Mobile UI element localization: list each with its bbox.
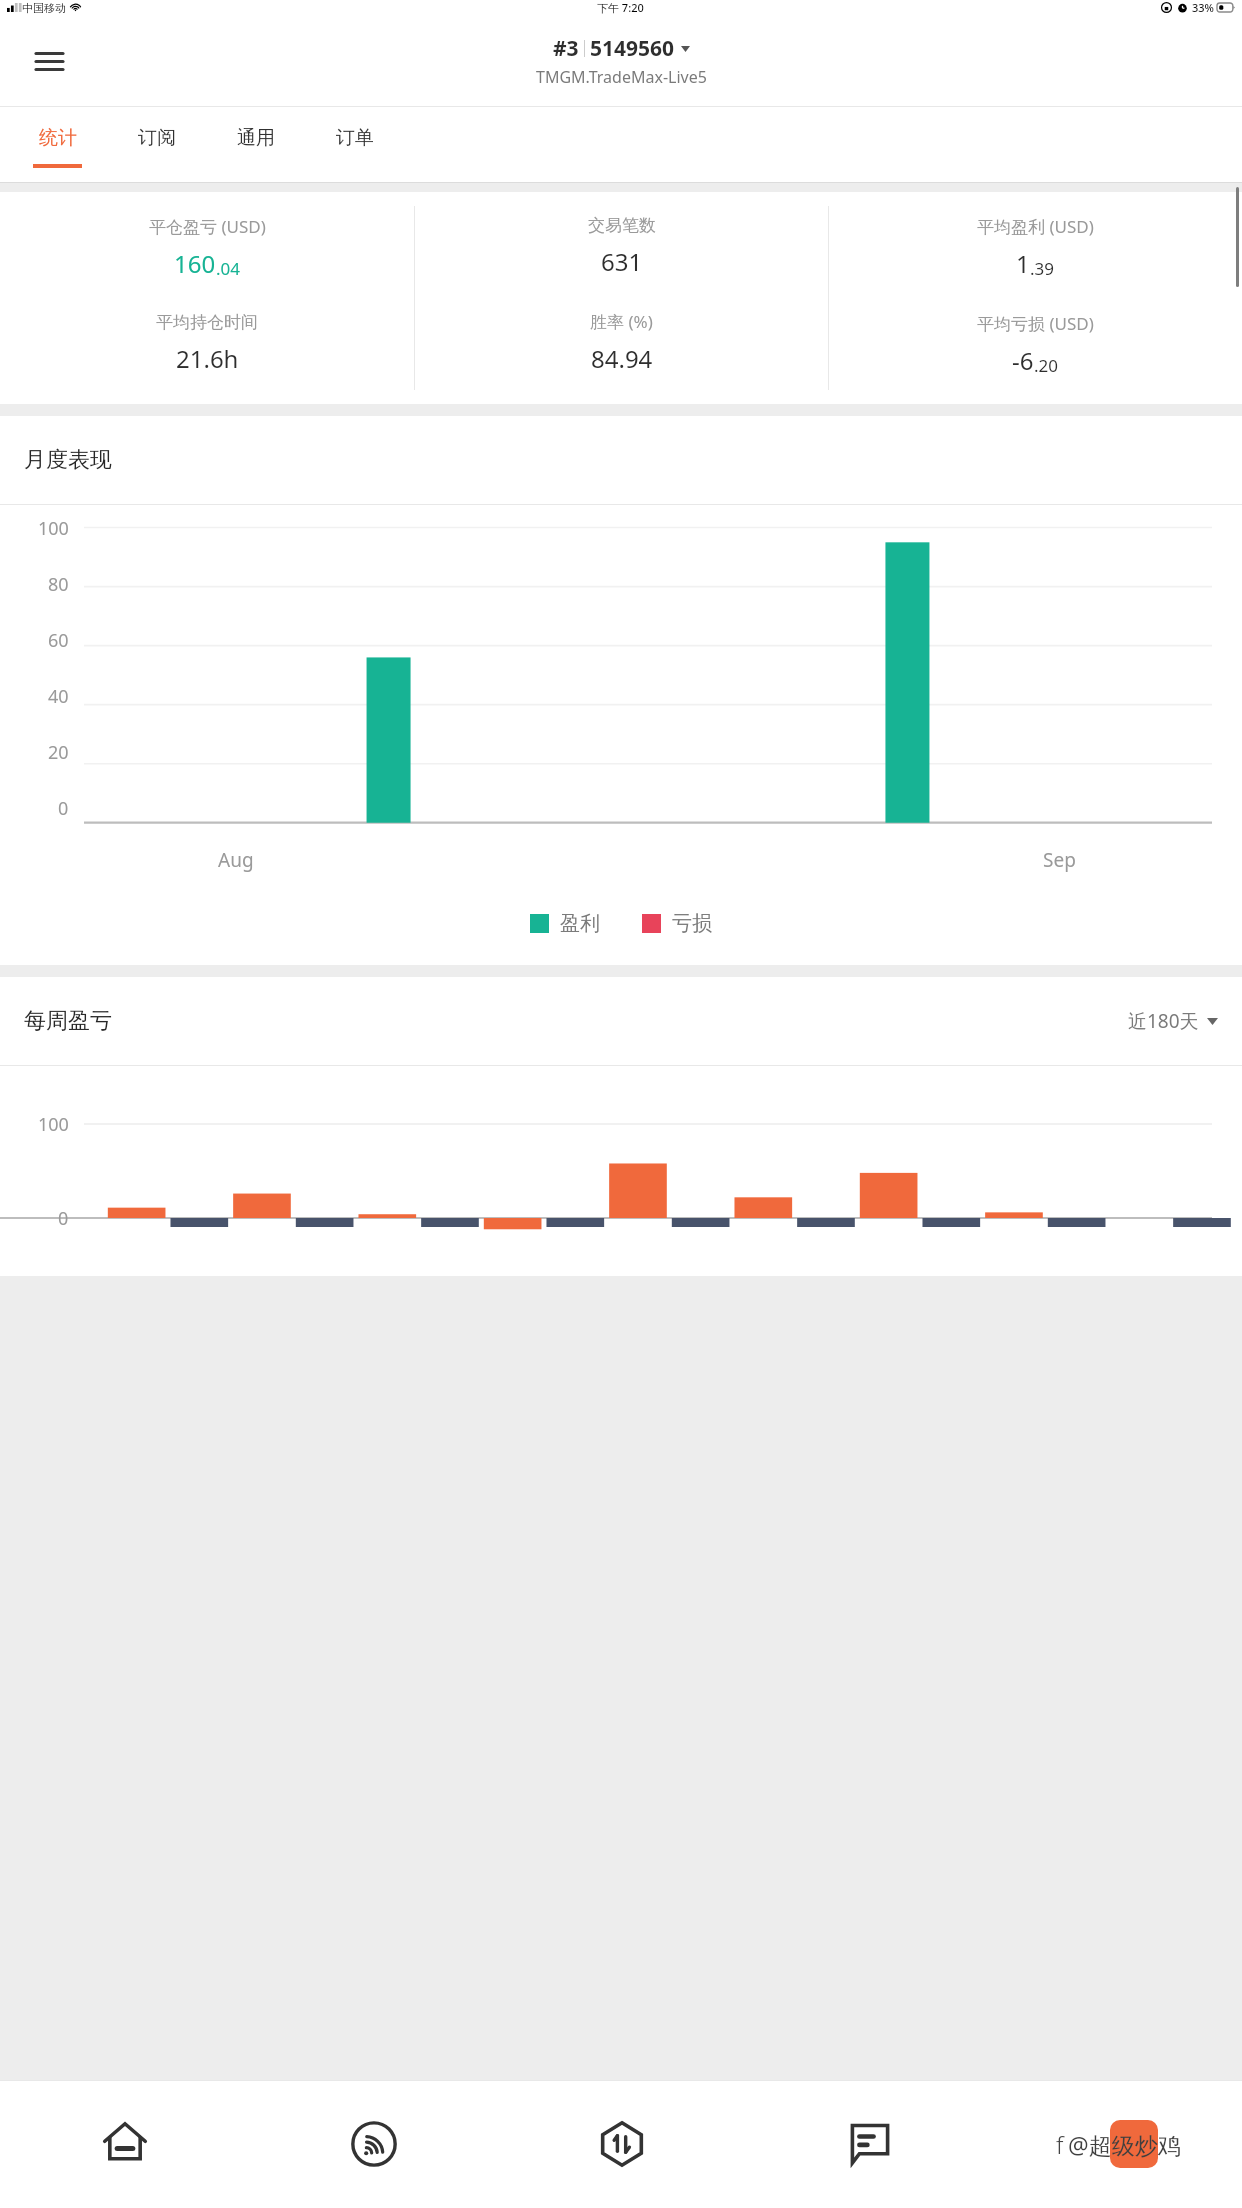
staticText: 84.94 (591, 342, 653, 375)
staticText: 订单 (336, 126, 374, 150)
button[interactable]: 通用 (222, 107, 288, 182)
staticText: 交易笔数 (588, 215, 656, 236)
staticText: 60 (48, 628, 69, 653)
staticText: 亏损 (672, 911, 712, 936)
staticText: TMGM.TradeMax-Live5 (536, 66, 707, 88)
staticText: 5149560 (590, 34, 675, 63)
staticText: 平均盈利 (USD) (977, 215, 1094, 238)
button[interactable]: 统计 (24, 107, 90, 182)
staticText: @超级炒鸡 (1068, 2129, 1181, 2160)
button[interactable]: #3 (536, 34, 707, 88)
staticText: Aug (218, 847, 254, 873)
staticText: 平仓盈亏 (USD) (149, 215, 266, 238)
staticText: 近180天 (1128, 1008, 1199, 1034)
staticText: 每周盈亏 (24, 1007, 112, 1035)
staticText: -6 (1012, 344, 1034, 377)
staticText: 平均亏损 (USD) (977, 312, 1094, 335)
staticText: 通用 (237, 126, 275, 150)
staticText: 1 (1016, 247, 1030, 280)
staticText: f (1056, 2128, 1064, 2161)
button[interactable]: 近180天 (1128, 1008, 1218, 1034)
staticText: 631 (601, 245, 643, 278)
staticText: 下午 7:20 (597, 0, 644, 15)
button[interactable]: Trade (498, 2080, 746, 2208)
staticText: 0 (58, 796, 69, 821)
staticText: 平均持仓时间 (156, 312, 258, 333)
staticText: 0 (58, 1206, 69, 1231)
staticText: 统计 (39, 126, 77, 150)
button[interactable]: Menu (22, 34, 76, 88)
button[interactable]: 订单 (321, 107, 387, 182)
staticText: 胜率 (%) (590, 310, 653, 333)
staticText: 订阅 (138, 126, 176, 150)
staticText: #3 (553, 34, 579, 63)
staticText: 33% (1192, 0, 1214, 15)
button[interactable]: Chat (746, 2080, 994, 2208)
staticText: .20 (1034, 354, 1059, 377)
staticText: .04 (216, 257, 241, 280)
staticText: 40 (48, 684, 69, 709)
staticText: 80 (48, 572, 69, 597)
staticText: 20 (48, 740, 69, 765)
button[interactable]: 订阅 (123, 107, 189, 182)
staticText: 中国移动 (22, 1, 66, 15)
staticText: 160 (174, 247, 216, 280)
staticText: Sep (1043, 847, 1076, 873)
staticText: 21.6h (176, 342, 239, 375)
staticText: 月度表现 (24, 446, 112, 474)
staticText: 100 (38, 516, 69, 541)
staticText: 盈利 (560, 911, 600, 936)
staticText: .39 (1030, 257, 1055, 280)
button[interactable]: Signals (249, 2080, 498, 2208)
button[interactable]: Home (0, 2080, 249, 2208)
staticText: 100 (38, 1112, 69, 1137)
